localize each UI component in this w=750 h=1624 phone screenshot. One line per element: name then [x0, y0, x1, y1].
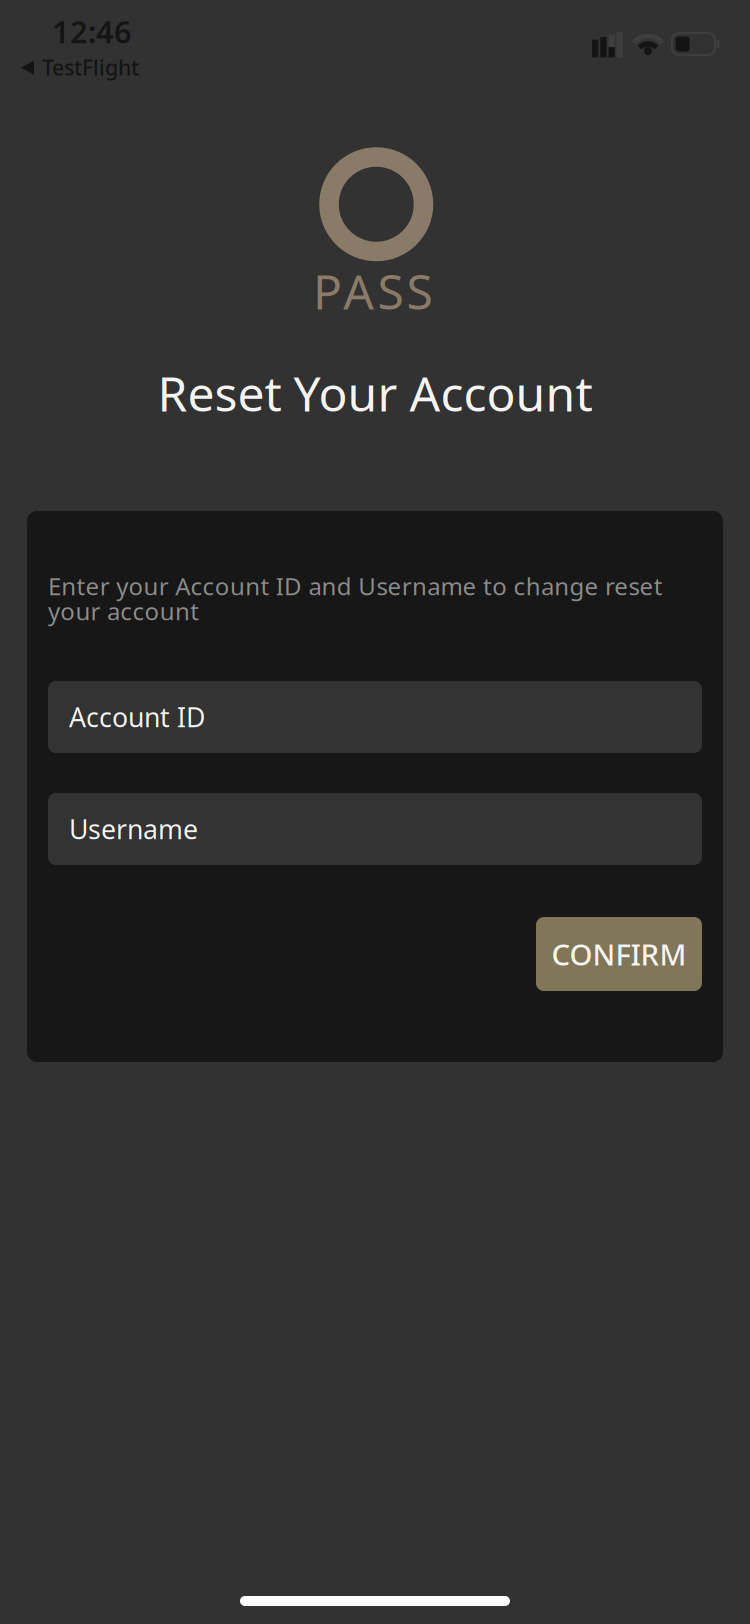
staticText: Reset Your Account [157, 361, 592, 425]
button[interactable]: CONFIRM [536, 917, 702, 991]
staticText: Enter your Account ID and Username to ch… [48, 570, 663, 602]
button[interactable]: Username [48, 793, 702, 865]
button[interactable]: TestFlight [0, 0, 139, 81]
staticText: CONFIRM [551, 934, 686, 973]
staticText: your account [48, 595, 199, 627]
staticText: TestFlight [42, 53, 139, 81]
button[interactable]: Account ID [48, 681, 702, 753]
staticText: PASS [313, 259, 448, 323]
staticText: Username [69, 811, 198, 847]
staticText: 12:46 [52, 11, 132, 52]
staticText: Account ID [69, 699, 205, 735]
